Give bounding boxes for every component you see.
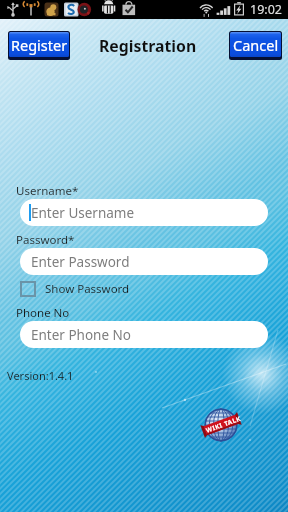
button[interactable]: Enter Phone No [20, 321, 268, 348]
staticText: Register [11, 35, 68, 55]
button[interactable]: Cancel [229, 31, 282, 60]
button[interactable]: Enter Username [20, 199, 268, 226]
staticText: Cancel [233, 35, 279, 55]
staticText: Registration [99, 35, 197, 57]
button[interactable]: Enter Password [20, 248, 268, 275]
staticText: Show Password [45, 281, 130, 297]
button[interactable]: Show Password [20, 281, 130, 297]
staticText: WIKI TALK [205, 414, 242, 434]
staticText: Phone No [16, 305, 70, 321]
other: Wiki Talk logo [200, 404, 244, 448]
button[interactable]: Register [8, 31, 70, 60]
staticText: Enter Username [31, 204, 135, 222]
staticText: Enter Phone No [31, 326, 131, 344]
staticText: 19:02 [250, 1, 282, 18]
staticText: Username* [16, 183, 79, 199]
staticText: Version:1.4.1 [7, 368, 74, 383]
staticText: Enter Password [31, 253, 130, 271]
staticText: Password* [16, 232, 75, 248]
